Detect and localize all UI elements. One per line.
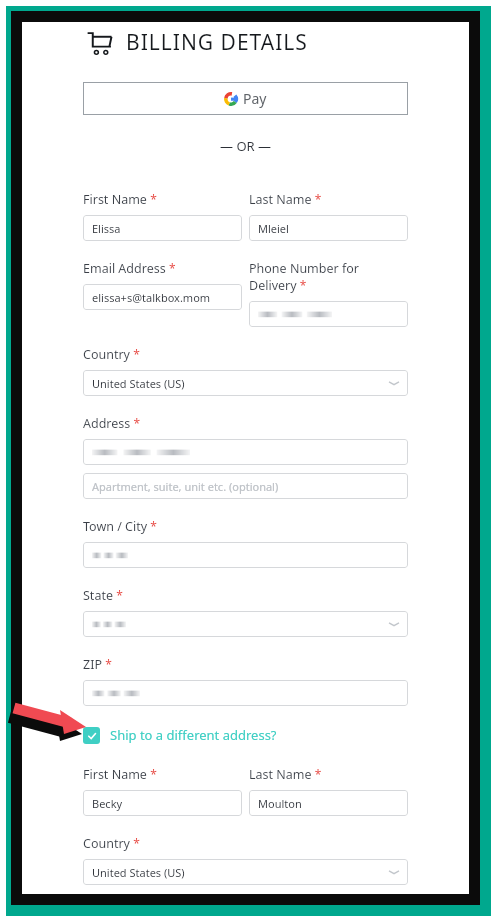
staticText: Mleiel [258,221,289,236]
staticText: Phone Number for Delivery * [249,260,408,294]
button[interactable]: Elissa [83,215,242,241]
button[interactable] [249,301,408,327]
button[interactable]: Ship to a different address? [83,726,277,744]
staticText: United States (US) [92,376,185,391]
button[interactable]: Mleiel [249,215,408,241]
staticText: First Name * [83,191,157,208]
staticText: Becky [92,796,123,811]
button[interactable]: United States (US) [83,370,408,396]
staticText: Apartment, suite, unit etc. (optional) [92,479,279,494]
staticText: Country * [83,346,140,363]
staticText: Last Name * [249,766,322,783]
staticText: Elissa [92,221,121,236]
button[interactable]: elissa+s@talkbox.mom [83,284,242,310]
other: Shopping cart [86,30,112,56]
staticText: Moulton [258,796,302,811]
button[interactable]: Becky [83,790,242,816]
button[interactable]: Moulton [249,790,408,816]
button[interactable]: United States (US) [83,859,408,885]
staticText: Address * [83,415,141,432]
staticText: Email Address * [83,260,176,277]
button[interactable] [83,439,408,465]
button[interactable] [83,542,408,568]
staticText: Last Name * [249,191,322,208]
other: Annotation arrow [0,0,497,922]
staticText: Country * [83,835,140,852]
staticText: United States (US) [92,865,185,880]
staticText: BILLING DETAILS [126,28,308,57]
button[interactable]: Pay [83,82,408,115]
staticText: First Name * [83,766,157,783]
staticText: elissa+s@talkbox.mom [92,290,211,305]
staticText: ZIP * [83,656,112,673]
staticText: Pay [243,89,267,108]
staticText: Town / City * [83,518,157,535]
staticText: — OR — [83,137,408,155]
button[interactable]: Apartment, suite, unit etc. (optional) [83,473,408,499]
button[interactable] [83,611,408,637]
button[interactable] [83,680,408,706]
staticText: State * [83,587,123,604]
staticText: Ship to a different address? [110,726,277,744]
